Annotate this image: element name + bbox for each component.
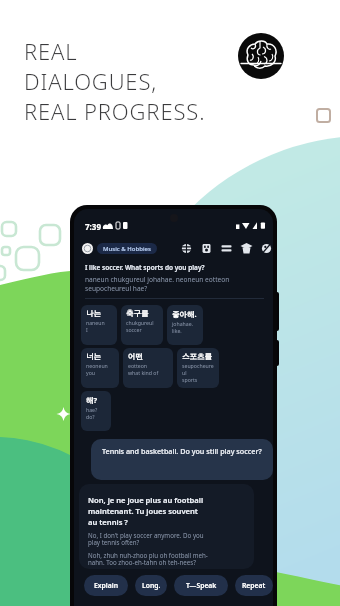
staticText: Explain [94,581,119,590]
staticText: johahae. [172,320,194,327]
staticText: 7:39 [85,221,101,230]
button[interactable]: App logo [238,33,284,79]
staticText: No, I don't play soccer anymore. Do you … [88,531,206,547]
staticText: Non, je ne joue plus au football mainten… [88,495,208,527]
staticText: I [86,326,88,333]
button[interactable]: Practice [261,243,272,254]
button[interactable]: Notes [201,243,212,254]
staticText: Tennis and basketball. Do you still play… [102,446,262,456]
staticText: you [86,369,95,376]
button[interactable]: 스포츠를 [182,352,214,384]
staticText: like. [172,327,182,334]
button[interactable]: T—Speak [174,575,228,596]
button[interactable]: 해? [86,395,106,427]
staticText: REAL PROGRESS. [24,96,206,126]
staticText: 축구를 [126,309,149,318]
button[interactable]: Tennis and basketball. Do you still play… [102,446,262,473]
staticText: chukgureul [126,319,154,326]
staticText: 어떤 [128,352,143,361]
staticText: do? [86,413,95,420]
button[interactable]: 좋아해. [172,309,198,341]
staticText: T—Speak [186,581,217,590]
button[interactable]: 어떤 [128,352,168,384]
staticText: what kind of [128,369,159,376]
staticText: 너는 [86,352,101,361]
button[interactable]: Explain [84,575,128,596]
button[interactable]: Repeat [235,575,273,596]
staticText: 나는 [86,309,101,318]
staticText: Noh, zhuh nuh-zhoo plu oh football meh-n… [88,551,223,567]
staticText: I like soccer. What sports do you play? [85,263,205,272]
staticText: eotteon [128,362,148,369]
staticText: 해? [86,395,98,405]
button[interactable]: Translate [181,243,192,254]
staticText: soccer [126,326,142,333]
staticText: 좋아해. [172,309,197,319]
button[interactable]: Menu [221,243,232,254]
staticText: Repeat [242,581,266,590]
staticText: REAL [24,36,78,66]
staticText: Long. [142,581,161,590]
button[interactable]: 축구를 [126,309,158,341]
staticText: naneun [86,319,105,326]
button[interactable]: Long. [135,575,167,596]
staticText: sports [182,376,198,383]
button[interactable]: Music & Hobbies [103,243,151,254]
button[interactable]: Profile [82,243,93,254]
button[interactable]: 너는 [86,352,114,384]
staticText: DIALOGUES, [24,66,158,96]
staticText: seupocheureul [182,362,214,376]
button[interactable]: Courses [241,243,252,254]
staticText: hae? [86,406,98,413]
staticText: 스포츠를 [182,352,212,361]
staticText: Music & Hobbies [103,245,151,253]
staticText: neoneun [86,362,108,369]
button[interactable]: 나는 [86,309,112,341]
staticText: naneun chukgureul johahae. neoneun eotte… [85,275,264,293]
